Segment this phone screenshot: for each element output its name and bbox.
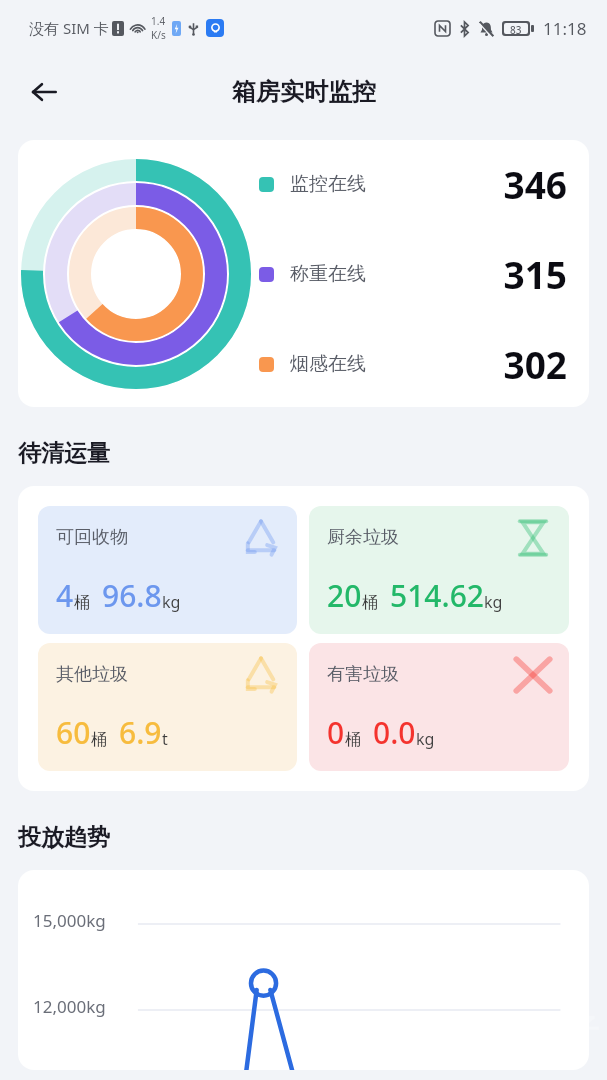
staticText: 烟感在线: [290, 352, 366, 376]
staticText: 桶: [91, 730, 107, 750]
staticText: 桶: [362, 593, 378, 613]
staticText: 0.0: [373, 712, 416, 753]
staticText: t: [162, 728, 168, 750]
staticText: 有害垃圾: [327, 663, 399, 686]
staticText: 6.9: [119, 712, 162, 753]
staticText: kg: [162, 591, 181, 613]
staticText: 346: [503, 159, 567, 209]
staticText: 302: [503, 339, 567, 389]
button[interactable]: Back: [20, 68, 68, 116]
staticText: 20: [327, 575, 362, 616]
staticText: 60: [56, 712, 91, 753]
staticText: 投放趋势: [18, 823, 110, 852]
staticText: 其他垃圾: [56, 663, 128, 686]
staticText: 监控在线: [290, 172, 366, 196]
staticText: 待清运量: [18, 439, 110, 468]
button[interactable]: 有害垃圾: [309, 643, 569, 771]
staticText: 83: [510, 23, 522, 34]
staticText: 15,000kg: [33, 909, 106, 932]
button[interactable]: 称重在线: [259, 249, 567, 299]
button[interactable]: 其他垃圾: [38, 643, 297, 771]
staticText: 可回收物: [56, 526, 128, 549]
staticText: 11:18: [543, 17, 587, 40]
button[interactable]: 监控在线: [18, 140, 589, 407]
staticText: 1.4: [151, 14, 166, 28]
staticText: kg: [484, 591, 503, 613]
button[interactable]: 烟感在线: [259, 339, 567, 389]
staticText: 没有 SIM 卡: [29, 18, 109, 38]
button[interactable]: 厨余垃圾: [309, 506, 569, 634]
staticText: 桶: [345, 730, 361, 750]
staticText: 七叶子: [515, 1012, 599, 1047]
button[interactable]: 可回收物: [38, 506, 297, 634]
staticText: 4: [56, 575, 74, 616]
staticText: 96.8: [102, 575, 162, 616]
staticText: 箱房实时监控: [232, 77, 376, 107]
button[interactable]: 监控在线: [259, 159, 567, 209]
staticText: kg: [416, 728, 435, 750]
staticText: 12,000kg: [33, 995, 106, 1018]
button[interactable]: 15,000kg: [18, 870, 589, 1070]
staticText: 厨余垃圾: [327, 526, 399, 549]
staticText: 315: [503, 249, 567, 299]
staticText: 514.62: [390, 575, 484, 616]
staticText: 称重在线: [290, 262, 366, 286]
staticText: K/s: [151, 28, 166, 42]
staticText: 桶: [74, 593, 90, 613]
staticText: 0: [327, 712, 345, 753]
